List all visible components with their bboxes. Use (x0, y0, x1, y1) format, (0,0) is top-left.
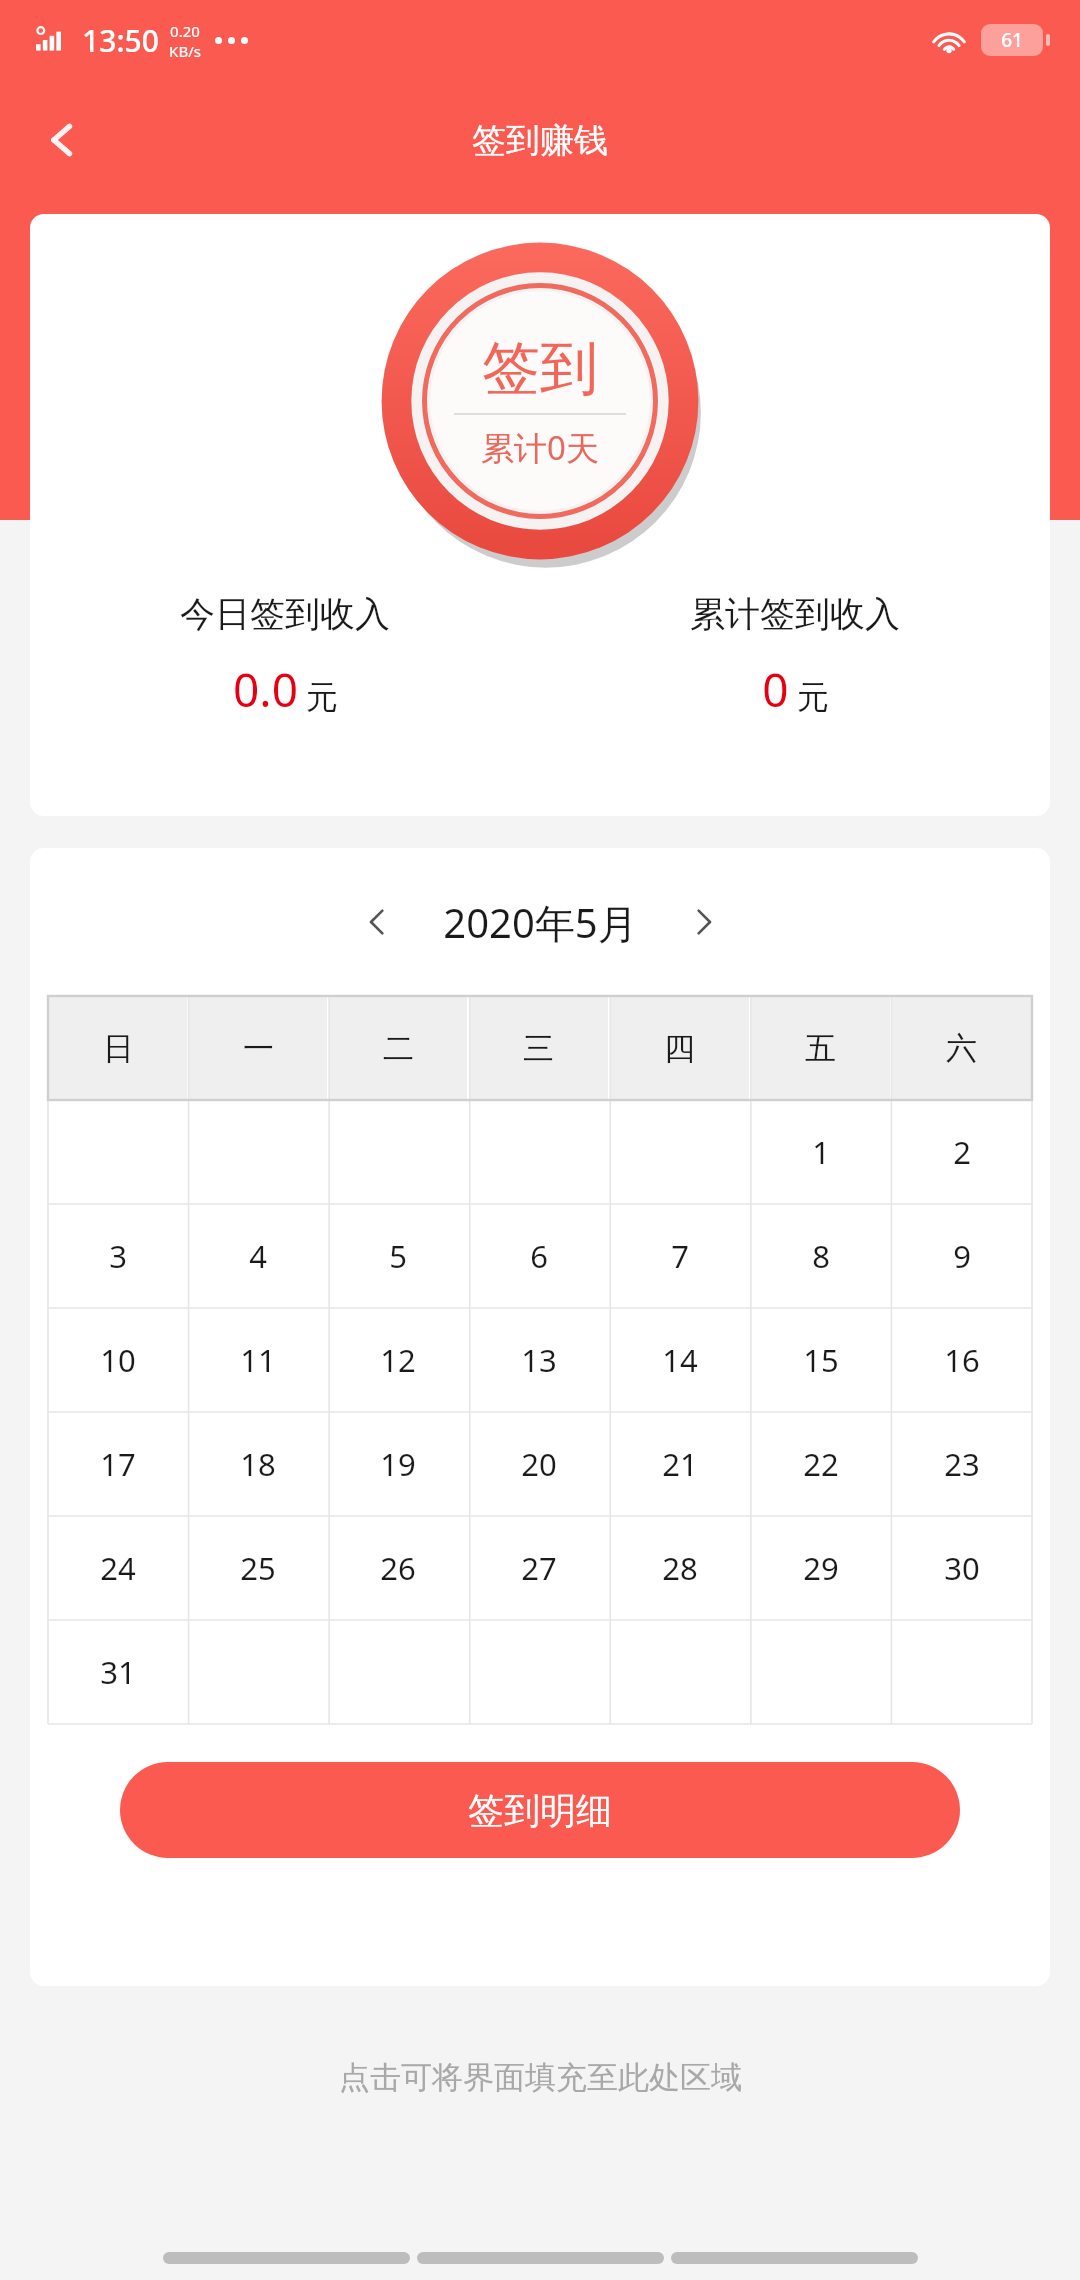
button[interactable]: 20 (469, 1413, 608, 1515)
staticText: 29 (803, 1547, 839, 1589)
button[interactable]: 10 (49, 1309, 187, 1411)
button[interactable]: 签到明细 (120, 1762, 960, 1858)
staticText: 12 (380, 1339, 416, 1381)
staticText: 16 (944, 1339, 980, 1381)
button[interactable]: 15 (751, 1309, 890, 1411)
button[interactable]: 16 (892, 1309, 1031, 1411)
staticText: 14 (662, 1339, 698, 1381)
button[interactable]: Navigation (671, 2252, 918, 2264)
button[interactable]: Navigation (163, 2252, 410, 2264)
staticText: 日 (103, 1029, 134, 1068)
staticText: 二 (383, 1029, 414, 1068)
staticText: 17 (100, 1443, 136, 1485)
staticText: 5 (389, 1235, 407, 1277)
button[interactable]: 17 (49, 1413, 187, 1515)
staticText: 22 (803, 1443, 839, 1485)
button[interactable]: 23 (892, 1413, 1031, 1515)
staticText: 23 (944, 1443, 980, 1485)
button[interactable]: 4 (189, 1205, 327, 1307)
staticText: 15 (803, 1339, 839, 1381)
button[interactable]: 13 (469, 1309, 608, 1411)
staticText: 11 (240, 1339, 276, 1381)
button[interactable]: 12 (329, 1309, 467, 1411)
staticText: 20 (521, 1443, 557, 1485)
button[interactable]: 今日签到收入 (30, 592, 540, 721)
button[interactable]: 26 (329, 1517, 467, 1619)
staticText: 四 (664, 1029, 695, 1068)
button[interactable]: 11 (189, 1309, 327, 1411)
button[interactable]: 19 (329, 1413, 467, 1515)
button[interactable]: 18 (189, 1413, 327, 1515)
button[interactable]: Next month (672, 890, 736, 954)
button[interactable]: 1 (751, 1101, 890, 1203)
button[interactable]: 28 (610, 1517, 749, 1619)
staticText: 30 (944, 1547, 980, 1589)
button[interactable]: 24 (49, 1517, 187, 1619)
staticText: 元 (797, 677, 829, 717)
staticText: 8 (812, 1235, 830, 1277)
staticText: 0 (762, 658, 789, 721)
button[interactable]: Navigation (417, 2252, 664, 2264)
button[interactable]: 30 (892, 1517, 1031, 1619)
staticText: 元 (306, 677, 338, 717)
staticText: 0.20 (170, 21, 200, 41)
button[interactable]: 2 (892, 1101, 1031, 1203)
staticText: 三 (523, 1029, 554, 1068)
staticText: 五 (805, 1029, 836, 1068)
staticText: 签到赚钱 (472, 119, 608, 162)
staticText: 10 (100, 1339, 136, 1381)
button[interactable]: 9 (892, 1205, 1031, 1307)
staticText: 今日签到收入 (180, 592, 390, 636)
button[interactable]: 7 (610, 1205, 749, 1307)
button[interactable]: 累计签到收入 (540, 592, 1050, 721)
button[interactable]: 8 (751, 1205, 890, 1307)
staticText: 18 (240, 1443, 276, 1485)
staticText: 0.0 (233, 658, 298, 721)
staticText: 31 (100, 1651, 136, 1693)
staticText: 27 (521, 1547, 557, 1589)
staticText: 3 (109, 1235, 127, 1277)
staticText: 4 (249, 1235, 267, 1277)
staticText: 六 (946, 1029, 977, 1068)
button[interactable]: 5 (329, 1205, 467, 1307)
button[interactable]: 27 (469, 1517, 608, 1619)
button[interactable]: 签到 (375, 236, 705, 566)
button[interactable]: 21 (610, 1413, 749, 1515)
staticText: 一 (243, 1029, 274, 1068)
staticText: 9 (953, 1235, 971, 1277)
button[interactable]: Previous month (345, 890, 409, 954)
staticText: 61 (1001, 27, 1023, 53)
staticText: 签到明细 (468, 1788, 612, 1833)
button[interactable]: 14 (610, 1309, 749, 1411)
button[interactable]: 3 (49, 1205, 187, 1307)
button[interactable]: Back (20, 98, 104, 182)
staticText: 点击可将界面填充至此处区域 (339, 2058, 742, 2097)
staticText: 13:50 (82, 20, 159, 61)
staticText: 7 (671, 1235, 689, 1277)
button[interactable]: 6 (469, 1205, 608, 1307)
button[interactable]: 31 (49, 1621, 187, 1723)
staticText: 25 (240, 1547, 276, 1589)
staticText: 13 (521, 1339, 557, 1381)
staticText: 累计0天 (481, 425, 599, 470)
staticText: 签到 (482, 332, 598, 405)
staticText: 19 (380, 1443, 416, 1485)
staticText: 2 (953, 1131, 971, 1173)
staticText: 1 (812, 1131, 830, 1173)
button[interactable]: 29 (751, 1517, 890, 1619)
staticText: KB/s (169, 41, 201, 61)
staticText: 26 (380, 1547, 416, 1589)
button[interactable]: 22 (751, 1413, 890, 1515)
staticText: 21 (662, 1443, 698, 1485)
button[interactable]: 25 (189, 1517, 327, 1619)
staticText: 24 (100, 1547, 136, 1589)
